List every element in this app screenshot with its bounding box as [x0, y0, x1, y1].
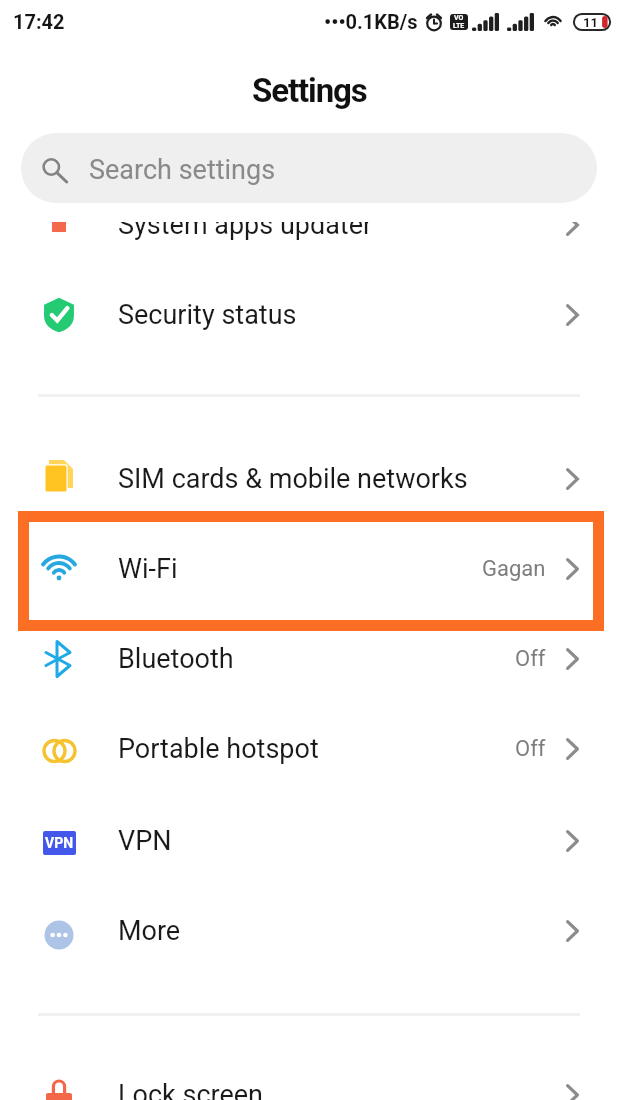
staticText: VPN	[45, 835, 74, 851]
staticText: Lock screen	[118, 1079, 263, 1100]
other: Wi-Fi highlighted	[18, 511, 604, 631]
staticText: Security status	[118, 299, 297, 331]
staticText: Settings	[252, 71, 367, 110]
staticText: SIM cards & mobile networks	[118, 463, 468, 495]
button[interactable]: SIM cards & mobile networks	[0, 434, 619, 524]
button[interactable]: Wi-Fi	[0, 524, 619, 614]
button[interactable]: Search settings	[21, 133, 597, 203]
staticText: Off	[515, 646, 546, 672]
staticText: Portable hotspot	[118, 733, 319, 765]
staticText: Bluetooth	[118, 643, 234, 675]
staticText: More	[118, 915, 181, 947]
button[interactable]: More	[0, 886, 619, 976]
staticText: 17:42	[13, 10, 65, 33]
button[interactable]: Lock screen	[0, 1050, 619, 1100]
staticText: VPN	[118, 825, 172, 857]
staticText: LTE	[453, 22, 465, 30]
button[interactable]: Bluetooth	[0, 614, 619, 704]
staticText: Wi-Fi	[118, 553, 178, 585]
button[interactable]: Portable hotspot	[0, 704, 619, 794]
staticText: Gagan	[482, 556, 546, 582]
staticText: Off	[515, 736, 546, 762]
button[interactable]: VPN	[0, 796, 619, 886]
staticText: •••0.1KB/s	[324, 10, 418, 33]
button[interactable]: System apps updater	[0, 222, 619, 270]
staticText: System apps updater	[118, 222, 373, 241]
staticText: Search settings	[89, 154, 276, 186]
button[interactable]: Security status	[0, 270, 619, 360]
staticText: VO	[454, 14, 464, 22]
staticText: 11	[583, 15, 598, 30]
